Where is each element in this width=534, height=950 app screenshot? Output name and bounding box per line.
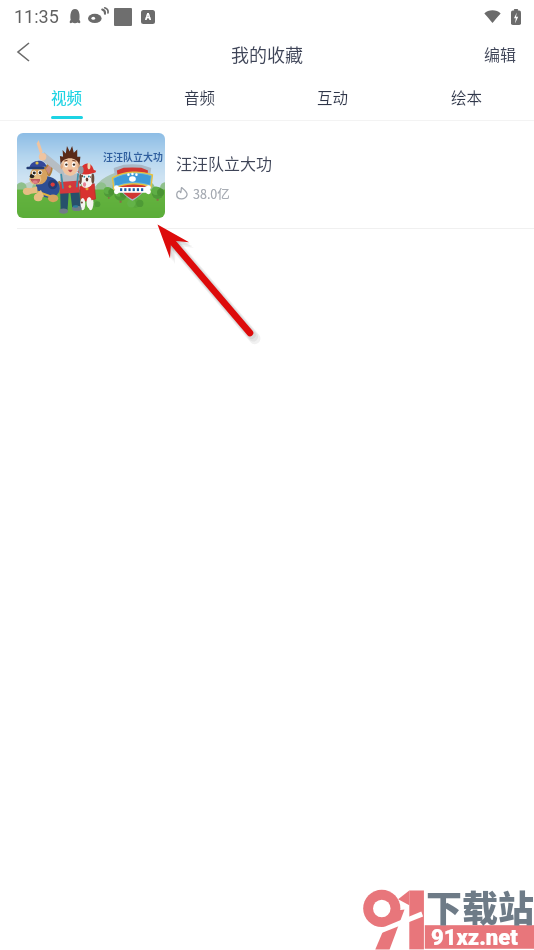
- staticText: 下载站: [426, 880, 534, 932]
- button[interactable]: 视频: [0, 78, 133, 120]
- button[interactable]: 互动: [266, 78, 400, 120]
- staticText: 汪汪队立大功: [103, 149, 163, 163]
- button[interactable]: 编辑: [467, 34, 534, 77]
- staticText: 11:35: [14, 6, 59, 27]
- staticText: 我的收藏: [231, 41, 303, 67]
- staticText: A: [145, 12, 152, 23]
- staticText: 互动: [317, 86, 349, 108]
- staticText: 音频: [184, 86, 216, 108]
- staticText: 汪汪队立大功: [176, 151, 273, 174]
- staticText: 编辑: [484, 42, 517, 65]
- staticText: 38.0亿: [193, 184, 230, 202]
- button[interactable]: Back: [0, 33, 50, 78]
- staticText: 视频: [51, 86, 83, 108]
- staticText: 绘本: [451, 86, 483, 108]
- button[interactable]: 音频: [133, 78, 266, 120]
- button[interactable]: 绘本: [400, 78, 534, 120]
- button[interactable]: 汪汪队立大功: [0, 121, 534, 228]
- staticText: 91xz.net: [431, 925, 518, 950]
